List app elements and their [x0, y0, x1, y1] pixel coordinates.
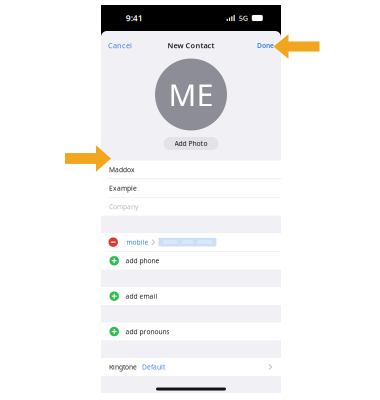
staticText: 9:41: [126, 12, 143, 24]
staticText: Add Photo: [174, 139, 207, 148]
staticText: add email: [125, 292, 157, 301]
staticText: Cancel: [108, 40, 132, 50]
button[interactable]: Cancel: [106, 36, 134, 54]
staticText: Done: [257, 41, 274, 50]
button[interactable]: Ringtone: [101, 358, 281, 376]
staticText: Example: [109, 184, 137, 193]
staticText: Default: [142, 362, 165, 371]
staticText: add phone: [125, 256, 159, 265]
staticText: ME: [168, 74, 213, 115]
button[interactable]: Add Photo: [163, 137, 218, 150]
staticText: mobile: [126, 238, 148, 247]
staticText: Maddox: [109, 165, 135, 174]
staticText: Ringtone: [109, 362, 137, 371]
staticText: Company: [109, 202, 138, 211]
button[interactable]: Done: [255, 37, 276, 54]
button[interactable]: add pronouns: [101, 322, 281, 341]
staticText: 5G: [239, 13, 248, 23]
button[interactable]: add email: [101, 287, 281, 305]
staticText: New Contact: [167, 40, 214, 50]
staticText: add pronouns: [125, 327, 169, 336]
button[interactable]: add phone: [101, 252, 281, 270]
